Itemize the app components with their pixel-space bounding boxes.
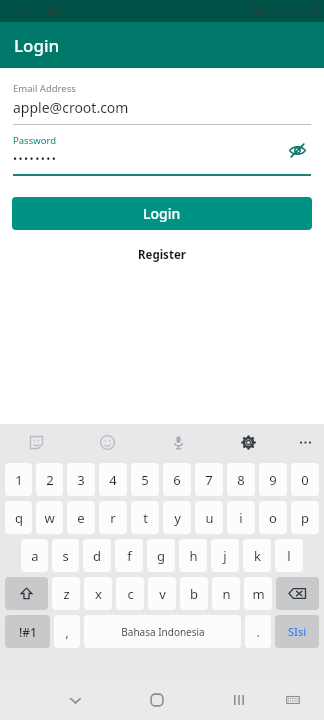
button[interactable]: Stickers [22, 428, 50, 456]
button[interactable]: More options [291, 428, 319, 456]
staticText: v [159, 585, 166, 603]
staticText: x [95, 585, 102, 603]
button[interactable]: b [180, 577, 208, 610]
staticText: u [205, 509, 214, 527]
button[interactable]: Keyboard settings [234, 428, 262, 456]
staticText: Password [13, 134, 56, 147]
staticText: 0 [301, 471, 309, 489]
staticText: o [269, 509, 277, 527]
staticText: . [256, 624, 260, 640]
button[interactable]: . [245, 615, 271, 648]
button[interactable]: a [21, 539, 48, 572]
button[interactable]: Bahasa Indonesia [84, 615, 241, 648]
button[interactable]: Backspace [276, 577, 319, 610]
staticText: h [189, 547, 198, 565]
button[interactable]: 3 [67, 463, 95, 496]
button[interactable]: Hide keyboard [58, 683, 92, 717]
staticText: s [62, 547, 69, 565]
button[interactable]: x [84, 577, 112, 610]
button[interactable]: Recents [222, 683, 256, 717]
button[interactable]: Login [12, 197, 312, 230]
button[interactable]: 9 [259, 463, 287, 496]
button[interactable]: u [195, 501, 223, 534]
button[interactable]: SIsi [275, 615, 319, 648]
button[interactable]: j [211, 539, 239, 572]
button[interactable]: 4 [99, 463, 127, 496]
button[interactable]: s [52, 539, 79, 572]
button[interactable]: h [179, 539, 207, 572]
staticText: t [143, 509, 148, 527]
button[interactable]: y [163, 501, 191, 534]
staticText: 3 [77, 471, 85, 489]
staticText: a [31, 547, 39, 565]
button[interactable]: o [259, 501, 287, 534]
button[interactable]: l [275, 539, 303, 572]
staticText: i [239, 509, 243, 527]
staticText: g [157, 547, 165, 565]
staticText: SIsi [288, 624, 307, 639]
staticText: f [127, 547, 132, 565]
staticText: l [287, 547, 291, 565]
staticText: n [222, 585, 231, 603]
staticText: m [252, 585, 265, 603]
staticText: 9 [269, 471, 277, 489]
staticText: 4 [109, 471, 117, 489]
staticText: !#1 [19, 624, 37, 640]
button[interactable]: 7 [195, 463, 223, 496]
button[interactable]: 1 [5, 463, 32, 496]
button[interactable]: 0 [291, 463, 319, 496]
button[interactable]: Home [140, 683, 174, 717]
button[interactable]: k [243, 539, 271, 572]
staticText: r [110, 509, 116, 527]
button[interactable]: q [5, 501, 32, 534]
staticText: , [65, 624, 69, 640]
button[interactable]: w [36, 501, 63, 534]
staticText: Email Address [13, 82, 76, 95]
staticText: y [174, 509, 181, 527]
button[interactable]: 6 [163, 463, 191, 496]
staticText: Bahasa Indonesia [121, 625, 205, 639]
staticText: 6 [173, 471, 181, 489]
staticText: 7 [205, 471, 213, 489]
staticText: 68% [289, 5, 308, 18]
button[interactable]: m [244, 577, 272, 610]
button[interactable]: Emoji [93, 428, 121, 456]
staticText: e [77, 509, 85, 527]
staticText: q [15, 509, 23, 527]
button[interactable]: i [227, 501, 255, 534]
staticText: Login [14, 34, 60, 57]
button[interactable]: d [83, 539, 111, 572]
button[interactable]: 8 [227, 463, 255, 496]
button[interactable]: p [291, 501, 319, 534]
button[interactable]: 2 [36, 463, 63, 496]
button[interactable]: Switch keyboard [276, 683, 310, 717]
staticText: 1 [15, 471, 23, 489]
staticText: Register [138, 247, 186, 263]
staticText: 8 [237, 471, 245, 489]
staticText: z [63, 585, 70, 603]
button[interactable]: , [54, 615, 80, 648]
button[interactable]: n [212, 577, 240, 610]
button[interactable]: r [99, 501, 127, 534]
staticText: p [301, 509, 309, 527]
staticText: •••••••• [13, 151, 58, 166]
button[interactable]: v [148, 577, 176, 610]
button[interactable]: t [131, 501, 159, 534]
staticText: c [127, 585, 134, 603]
button[interactable]: Show password [283, 136, 311, 164]
staticText: apple@croot.com [13, 98, 129, 117]
staticText: k [254, 547, 261, 565]
staticText: 12:54 [13, 5, 38, 18]
staticText: 5 [141, 471, 149, 489]
button[interactable]: e [67, 501, 95, 534]
button[interactable]: z [52, 577, 80, 610]
button[interactable]: c [116, 577, 144, 610]
staticText: w [44, 509, 55, 527]
button[interactable]: Voice input [164, 428, 192, 456]
button[interactable]: !#1 [5, 615, 50, 648]
button[interactable]: 5 [131, 463, 159, 496]
button[interactable]: Shift [5, 577, 48, 610]
button[interactable]: Register [120, 243, 204, 267]
button[interactable]: f [115, 539, 143, 572]
button[interactable]: g [147, 539, 175, 572]
